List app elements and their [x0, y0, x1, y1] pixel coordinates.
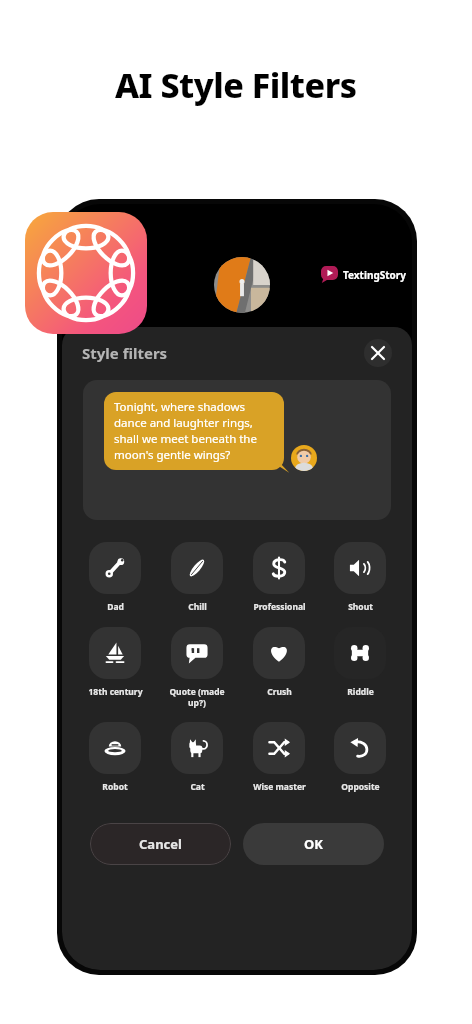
- button[interactable]: Quote (made up?): [156, 627, 238, 708]
- button[interactable]: Professional: [238, 542, 320, 613]
- button[interactable]: Dad: [74, 542, 156, 613]
- staticText: Shout: [348, 601, 373, 613]
- staticText: 18th century: [88, 686, 143, 698]
- button[interactable]: 18th century: [74, 627, 156, 698]
- button[interactable]: AI Style Filters app icon: [25, 212, 147, 334]
- staticText: Crush: [267, 686, 292, 698]
- staticText: Quote (made up?): [169, 686, 225, 708]
- staticText: TextingStory: [343, 268, 407, 282]
- staticText: Dad: [107, 601, 124, 613]
- button[interactable]: Chill: [156, 542, 238, 613]
- button[interactable]: Shout: [320, 542, 400, 613]
- staticText: OK: [304, 835, 323, 853]
- button[interactable]: Robot: [74, 722, 156, 793]
- button[interactable]: Cat: [156, 722, 238, 793]
- button[interactable]: OK: [243, 823, 384, 865]
- staticText: Chill: [188, 601, 207, 613]
- button[interactable]: Crush: [238, 627, 320, 698]
- staticText: Cancel: [139, 835, 182, 853]
- staticText: Wise master: [253, 781, 306, 793]
- staticText: Tonight, where shadows dance and laughte…: [114, 399, 274, 463]
- button[interactable]: Opposite: [320, 722, 400, 793]
- staticText: Opposite: [341, 781, 380, 793]
- staticText: Style filters: [82, 343, 168, 363]
- staticText: Cat: [190, 781, 205, 793]
- staticText: AI Style Filters: [115, 62, 357, 108]
- button[interactable]: Riddle: [320, 627, 400, 698]
- staticText: Riddle: [347, 686, 374, 698]
- staticText: Professional: [253, 601, 306, 613]
- button[interactable]: Wise master: [238, 722, 320, 793]
- button[interactable]: Close: [364, 339, 392, 367]
- staticText: Robot: [102, 781, 128, 793]
- button[interactable]: Cancel: [90, 823, 231, 865]
